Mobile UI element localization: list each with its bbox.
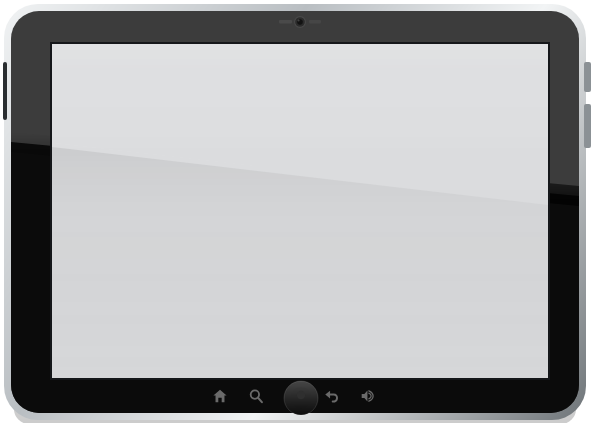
button[interactable]: Volume [353,384,383,408]
button[interactable]: Search [241,384,271,408]
button[interactable]: Home [205,384,235,408]
button[interactable]: Power button [277,384,311,408]
button[interactable]: Back [317,384,347,408]
